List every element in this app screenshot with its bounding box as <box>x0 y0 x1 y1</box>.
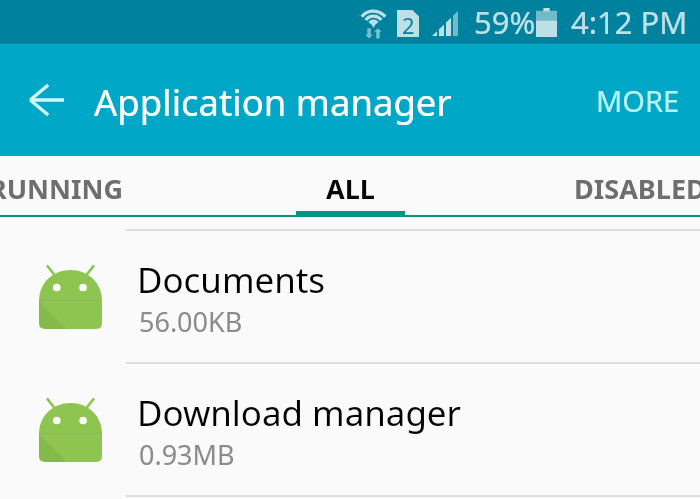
staticText: 56.00KB <box>139 303 243 340</box>
staticText: RUNNING <box>0 170 124 207</box>
button[interactable]: RUNNING <box>0 156 171 217</box>
button[interactable]: ALL <box>235 156 465 217</box>
staticText: Download manager <box>137 389 461 437</box>
staticText: DISABLED <box>574 170 700 207</box>
staticText: 59% <box>474 1 536 43</box>
button[interactable]: Documents <box>0 231 700 364</box>
staticText: 2 <box>402 10 415 37</box>
staticText: MORE <box>596 81 680 120</box>
button[interactable]: MORE <box>572 63 700 138</box>
staticText: Documents <box>137 256 326 304</box>
staticText: 4:12 PM <box>571 1 688 43</box>
button[interactable]: Download manager <box>0 364 700 497</box>
staticText: 0.93MB <box>139 436 235 473</box>
staticText: ALL <box>326 170 375 207</box>
button[interactable]: DISABLED <box>525 156 700 217</box>
button[interactable]: Navigate up <box>15 69 77 131</box>
staticText: Application manager <box>94 77 452 127</box>
